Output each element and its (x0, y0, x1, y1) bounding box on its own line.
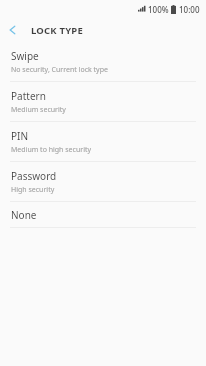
button[interactable]: Swipe (0, 42, 206, 81)
staticText: No security, Current lock type (11, 65, 108, 75)
button[interactable]: PIN (0, 122, 206, 161)
button[interactable]: Pattern (0, 82, 206, 121)
staticText: High security (11, 185, 55, 195)
staticText: LOCK TYPE (31, 24, 83, 37)
staticText: 100% (148, 4, 169, 15)
button[interactable]: None (0, 202, 206, 227)
button[interactable]: Back (0, 18, 26, 42)
button[interactable]: Password (0, 162, 206, 201)
staticText: Swipe (11, 49, 39, 63)
staticText: 10:00 (179, 4, 200, 15)
staticText: Medium security (11, 105, 66, 115)
staticText: PIN (11, 129, 29, 143)
staticText: Medium to high security (11, 145, 92, 155)
staticText: Pattern (11, 89, 46, 103)
staticText: None (11, 208, 37, 222)
staticText: Password (11, 169, 57, 183)
